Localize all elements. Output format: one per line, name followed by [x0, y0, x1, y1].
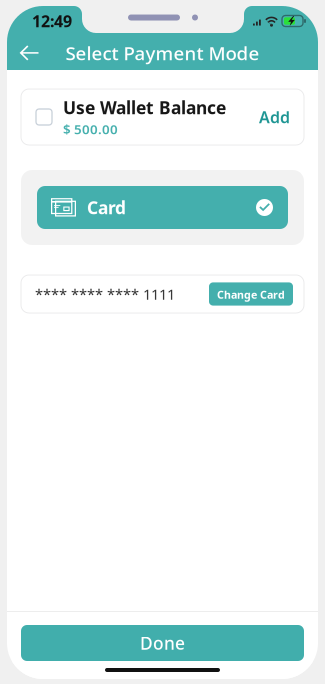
staticText: Select Payment Mode	[65, 41, 259, 65]
staticText: Done	[140, 631, 185, 654]
staticText: Change Card	[217, 287, 285, 302]
staticText: Use Wallet Balance	[63, 96, 226, 119]
button[interactable]: Back	[7, 35, 51, 71]
button[interactable]: Use Wallet Balance	[21, 89, 304, 145]
button[interactable]: Card	[37, 186, 288, 229]
staticText: 12:49	[32, 10, 72, 32]
button[interactable]: Done	[21, 625, 304, 661]
staticText: $ 500.00	[63, 120, 118, 138]
staticText: **** **** **** 1111	[35, 284, 175, 304]
staticText: Card	[87, 196, 126, 219]
button[interactable]: Change Card	[209, 282, 293, 306]
staticText: Add	[259, 106, 290, 128]
